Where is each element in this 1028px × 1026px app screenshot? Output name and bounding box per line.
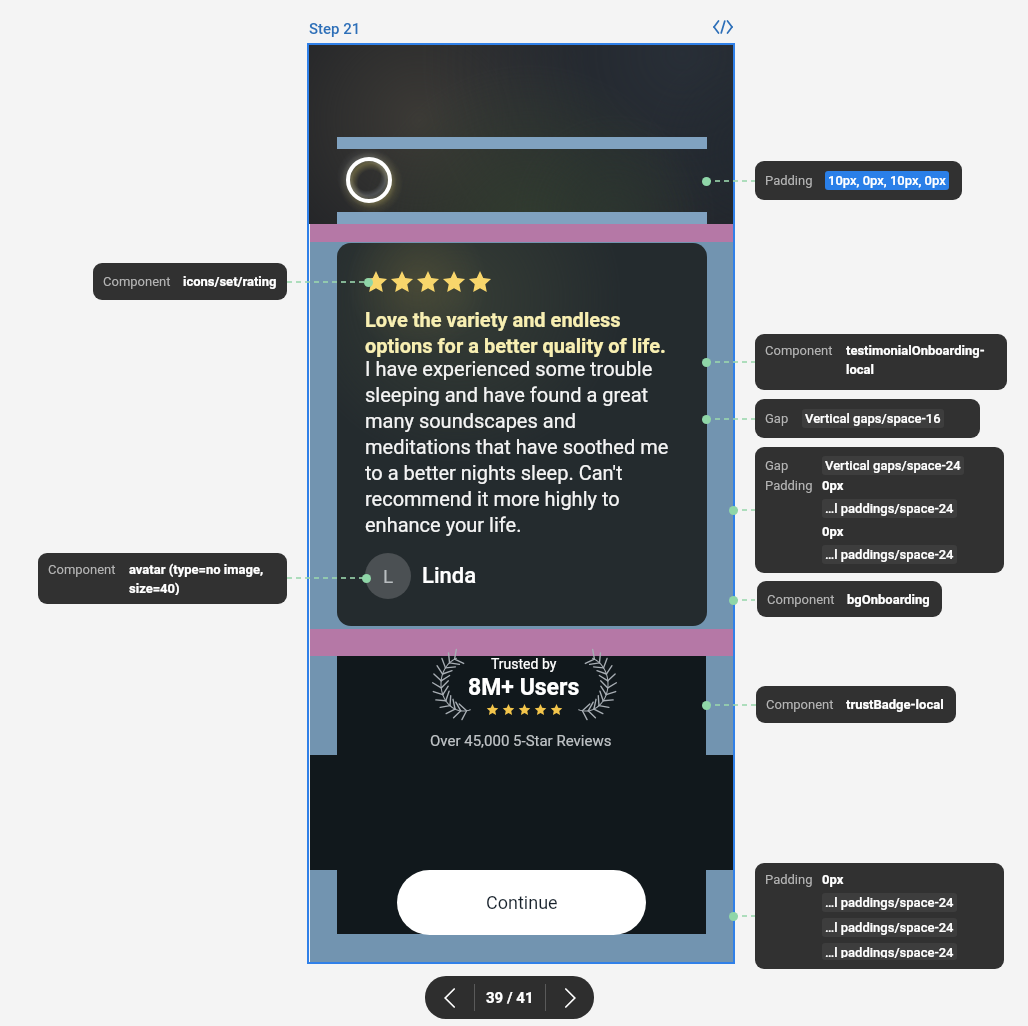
button[interactable]: Gap [755,447,1004,573]
button[interactable]: Component [755,334,1007,390]
button[interactable]: Previous step [425,976,474,1019]
staticText: bgOnboarding [847,592,930,607]
staticText: Vertical gaps/space-24 [825,458,961,473]
button[interactable]: Padding [755,161,962,200]
button[interactable]: Continue [397,870,646,935]
staticText: Gap [765,458,789,473]
staticText: …l paddings/space-24 [825,945,954,958]
staticText: Component [103,274,171,289]
staticText: …l paddings/space-24 [825,501,954,516]
staticText: Step 21 [309,20,361,38]
button[interactable]: Component [756,686,956,723]
staticText: Love the variety and endless options for… [365,308,686,357]
button[interactable]: Padding [755,863,1004,969]
button[interactable]: Component [757,581,942,617]
staticText: Component [48,562,116,577]
staticText: Gap [765,411,789,426]
staticText: Padding [765,173,813,188]
staticText: Component [766,697,834,712]
staticText: Component [767,592,835,607]
staticText: Padding [765,478,813,493]
staticText: L [383,565,394,587]
staticText: Padding [765,872,813,887]
staticText: I have experienced some trouble sleeping… [365,357,686,536]
button[interactable]: Next step [546,976,594,1019]
staticText: Over 45,000 5-Star Reviews [430,732,612,750]
button[interactable]: Love the variety and endless options for… [337,243,707,626]
staticText: …l paddings/space-24 [825,920,954,935]
staticText: icons/set/rating [183,274,277,289]
staticText: …l paddings/space-24 [825,547,954,562]
button[interactable]: Component [93,263,287,300]
staticText: avatar (type=no image, size=40) [129,562,264,595]
button[interactable]: Gap [755,399,980,438]
button[interactable]: View code [711,16,735,38]
staticText: …l paddings/space-24 [825,895,954,910]
staticText: 39 / 41 [486,989,534,1007]
staticText: Continue [486,892,558,913]
staticText: 0px [822,872,844,887]
staticText: 0px [822,478,844,493]
staticText: Vertical gaps/space-16 [805,411,941,426]
button[interactable]: Component [38,553,287,604]
staticText: trustBadge-local [846,697,944,712]
staticText: 0px [822,524,844,539]
staticText: 10px, 0px, 10px, 0px [828,173,946,188]
staticText: 8M+ Users [468,674,580,701]
staticText: Linda [422,563,477,589]
staticText: Trusted by [491,656,557,672]
staticText: Component [765,343,833,358]
staticText: testimonialOnboarding- local [846,343,985,377]
